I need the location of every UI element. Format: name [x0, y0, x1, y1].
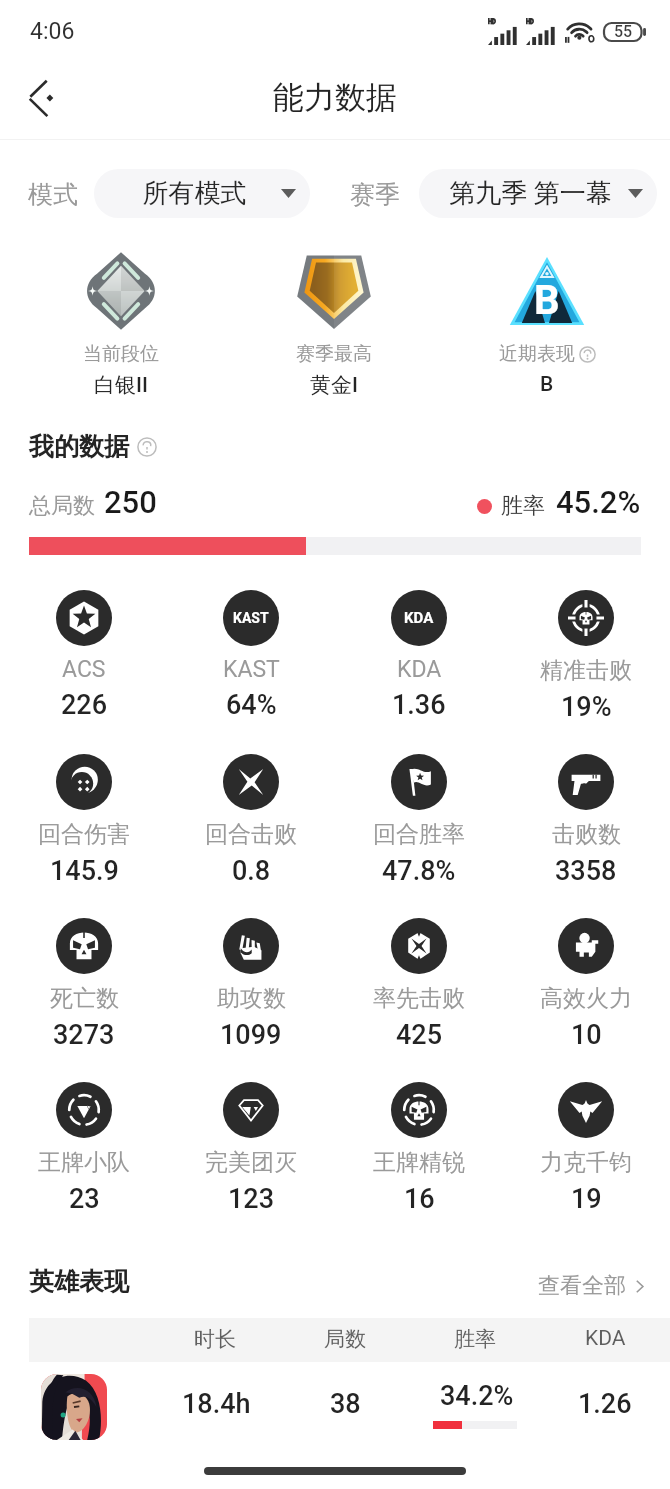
staticText: 助攻数 — [217, 984, 286, 1013]
staticText: 47.8% — [382, 855, 456, 887]
staticText: 18.4h — [182, 1388, 251, 1420]
staticText: 回合击败 — [205, 820, 297, 849]
staticText: B — [540, 372, 554, 397]
button[interactable]: 第九季 第一幕 — [419, 169, 657, 218]
staticText: 34.2% — [440, 1380, 514, 1412]
staticText: 局数 — [324, 1326, 366, 1352]
staticText: 38 — [330, 1388, 361, 1420]
staticText: KAST — [233, 610, 269, 626]
button[interactable]: 高效火力 — [504, 918, 668, 1051]
staticText: 19% — [561, 691, 612, 723]
staticText: B — [534, 277, 560, 324]
button[interactable]: 回合击败 — [169, 754, 333, 887]
staticText: 0.8 — [232, 855, 271, 887]
button[interactable]: 完美团灭 — [169, 1082, 333, 1215]
button[interactable]: 王牌精锐 — [337, 1082, 501, 1215]
staticText: 黄金I — [310, 372, 358, 398]
staticText: 3358 — [555, 855, 617, 887]
staticText: 1099 — [220, 1019, 282, 1051]
staticText: 能力数据 — [273, 78, 397, 117]
staticText: KDA — [404, 609, 434, 627]
button[interactable]: 当前段位 — [16, 251, 226, 398]
staticText: 4:06 — [30, 18, 75, 45]
button[interactable]: 回合胜率 — [337, 754, 501, 887]
staticText: 第九季 第一幕 — [433, 177, 628, 210]
button[interactable]: Back — [11, 69, 69, 127]
button[interactable]: 击败数 — [504, 754, 668, 887]
button[interactable]: 精准击败 — [504, 590, 668, 723]
staticText: 23 — [69, 1183, 100, 1215]
staticText: 10 — [571, 1019, 602, 1051]
staticText: 1.26 — [578, 1388, 632, 1420]
staticText: 3273 — [53, 1019, 115, 1051]
staticText: 64% — [226, 689, 277, 721]
button[interactable]: 助攻数 — [169, 918, 333, 1051]
staticText: 胜率 — [501, 492, 545, 520]
button[interactable]: KAST — [169, 590, 333, 721]
staticText: 高效火力 — [540, 984, 632, 1013]
staticText: 所有模式 — [108, 177, 281, 210]
button[interactable]: 率先击败 — [337, 918, 501, 1051]
staticText: 1.36 — [392, 689, 446, 721]
staticText: 回合胜率 — [373, 820, 465, 849]
staticText: 精准击败 — [540, 656, 632, 685]
staticText: 我的数据 — [29, 431, 129, 462]
staticText: ACS — [62, 656, 106, 683]
staticText: 19 — [571, 1183, 602, 1215]
button[interactable]: B — [442, 251, 652, 397]
staticText: KDA — [585, 1326, 626, 1351]
staticText: 力克千钧 — [540, 1148, 632, 1177]
staticText: 425 — [396, 1019, 443, 1051]
staticText: 当前段位 — [83, 342, 159, 366]
button[interactable]: 死亡数 — [2, 918, 166, 1051]
button[interactable]: 查看全部 — [538, 1272, 648, 1300]
button[interactable]: ACS — [2, 590, 166, 721]
staticText: 击败数 — [552, 820, 621, 849]
staticText: 近期表现 — [499, 342, 575, 366]
button[interactable]: 赛季最高 — [229, 251, 439, 398]
staticText: 16 — [404, 1183, 435, 1215]
staticText: 45.2% — [556, 484, 641, 520]
staticText: 250 — [104, 484, 157, 520]
button[interactable]: KDA — [337, 590, 501, 721]
staticText: 回合伤害 — [38, 820, 130, 849]
staticText: 白银II — [94, 372, 148, 398]
staticText: 总局数 — [29, 492, 95, 520]
staticText: 查看全部 — [538, 1272, 626, 1300]
staticText: 55 — [614, 22, 633, 41]
staticText: 完美团灭 — [205, 1148, 297, 1177]
staticText: KAST — [223, 656, 280, 683]
staticText: 赛季 — [350, 179, 400, 210]
button[interactable]: 回合伤害 — [2, 754, 166, 887]
button[interactable]: 王牌小队 — [2, 1082, 166, 1215]
staticText: 率先击败 — [373, 984, 465, 1013]
staticText: 赛季最高 — [296, 342, 372, 366]
button[interactable]: 力克千钧 — [504, 1082, 668, 1215]
staticText: 死亡数 — [50, 984, 119, 1013]
staticText: 英雄表现 — [29, 1266, 129, 1297]
staticText: 模式 — [28, 179, 78, 210]
staticText: KDA — [397, 656, 442, 683]
staticText: 123 — [228, 1183, 275, 1215]
staticText: 胜率 — [454, 1326, 496, 1352]
staticText: 时长 — [194, 1326, 236, 1352]
staticText: 226 — [61, 689, 108, 721]
staticText: 王牌小队 — [38, 1148, 130, 1177]
button[interactable]: 所有模式 — [94, 169, 310, 218]
staticText: 145.9 — [50, 855, 119, 887]
staticText: 王牌精锐 — [373, 1148, 465, 1177]
